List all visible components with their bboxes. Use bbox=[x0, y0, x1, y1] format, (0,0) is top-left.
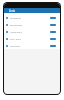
button[interactable]: Toggle bbox=[50, 24, 56, 26]
button[interactable]: Toggle bbox=[50, 45, 56, 47]
staticText: Sync data bbox=[10, 37, 50, 40]
staticText: Bluetooth bbox=[10, 16, 50, 19]
button[interactable]: Night light bbox=[4, 28, 60, 35]
staticText: Night light bbox=[10, 30, 50, 33]
staticText: Vibration bbox=[10, 44, 50, 47]
button[interactable]: Toggle bbox=[50, 17, 56, 19]
staticText: Brightness bbox=[10, 23, 50, 26]
button[interactable]: Brightness bbox=[4, 21, 60, 28]
button[interactable]: Toggle bbox=[50, 38, 56, 40]
button[interactable]: Sync data bbox=[4, 35, 60, 42]
button[interactable]: Bluetooth bbox=[4, 14, 60, 21]
staticText: Lists bbox=[9, 9, 16, 13]
button[interactable]: Toggle bbox=[50, 31, 56, 33]
button[interactable]: Vibration bbox=[4, 42, 60, 49]
